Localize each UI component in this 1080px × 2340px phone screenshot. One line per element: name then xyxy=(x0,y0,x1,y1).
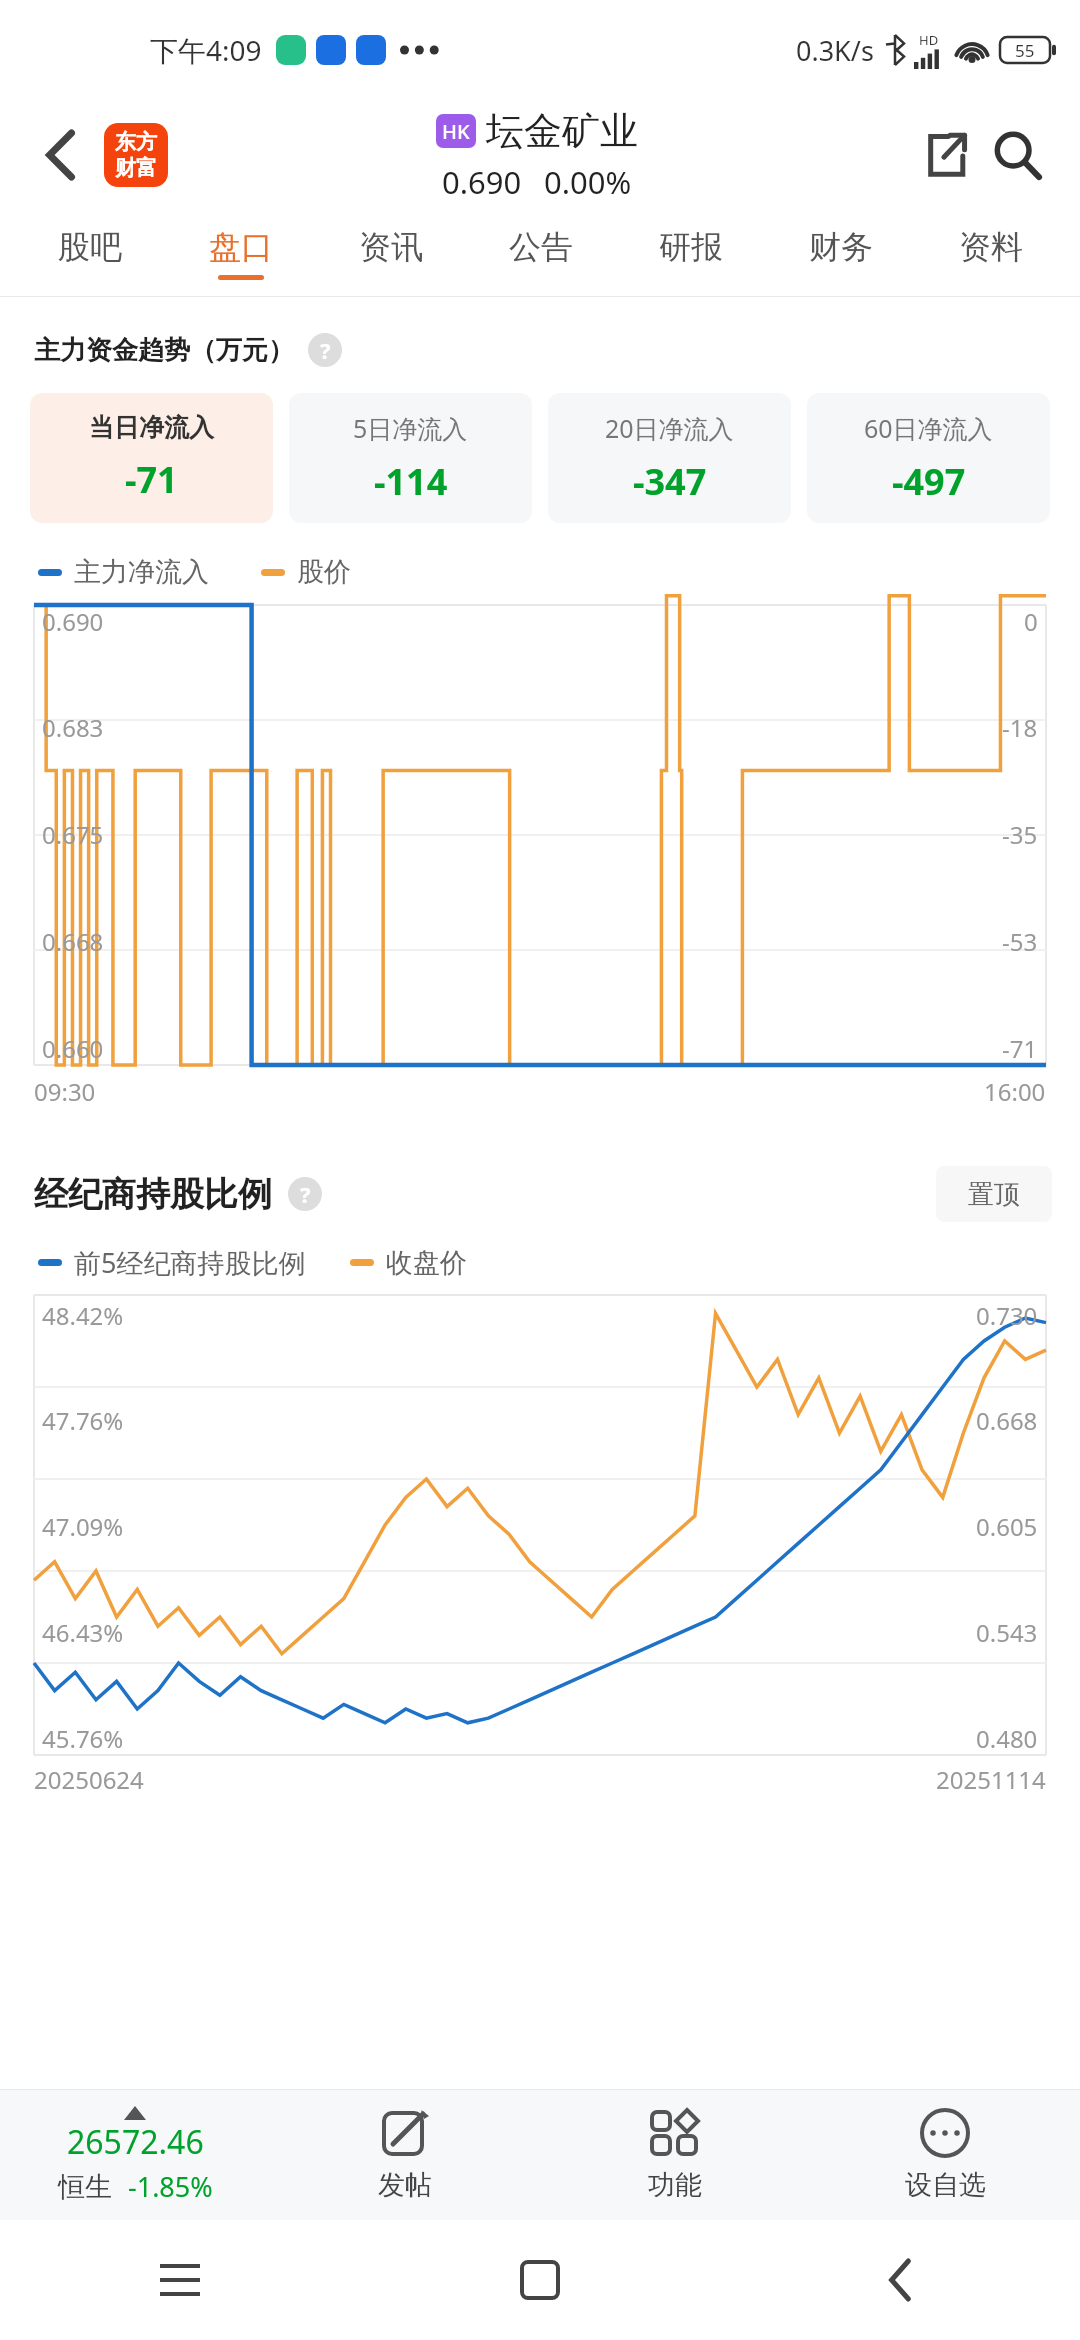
staticText: -347 xyxy=(633,457,707,506)
staticText: 股价 xyxy=(297,555,351,589)
staticText: HK xyxy=(442,118,470,145)
staticText: 前5经纪商持股比例 xyxy=(74,1244,306,1281)
staticText: 0.668 xyxy=(976,1404,1038,1437)
button[interactable]: 设自选 xyxy=(810,2090,1080,2220)
staticText: 47.76% xyxy=(42,1404,124,1437)
staticText: 东方 xyxy=(115,129,157,155)
staticText: 20251114 xyxy=(936,1763,1046,1796)
staticText: 0.683 xyxy=(42,711,104,744)
staticText: 主力净流入 xyxy=(74,555,209,589)
staticText: 研报 xyxy=(659,227,723,267)
staticText: 0.543 xyxy=(976,1616,1038,1649)
staticText: -114 xyxy=(374,457,448,506)
staticText: 设自选 xyxy=(905,2168,986,2202)
button[interactable]: 发帖 xyxy=(270,2090,540,2220)
staticText: 16:00 xyxy=(984,1075,1046,1108)
button[interactable]: 20日净流入 xyxy=(548,393,791,523)
button[interactable]: Share xyxy=(906,118,980,192)
staticText: 股吧 xyxy=(58,227,122,267)
staticText: 盘口 xyxy=(209,227,273,267)
staticText: -53 xyxy=(1002,925,1038,958)
staticText: 坛金矿业 xyxy=(486,107,638,155)
staticText: 资料 xyxy=(959,227,1023,267)
staticText: 0.690 xyxy=(42,605,104,638)
staticText: 置顶 xyxy=(968,1178,1020,1211)
staticText: 55 xyxy=(1015,39,1035,62)
staticText: 资讯 xyxy=(359,227,423,267)
button[interactable]: 26572.46 xyxy=(0,2090,270,2220)
staticText: 60日净流入 xyxy=(864,411,993,445)
staticText: 收盘价 xyxy=(386,1246,467,1280)
staticText: 26572.46 xyxy=(67,2120,204,2164)
button[interactable]: 东方财富 xyxy=(104,123,168,187)
button[interactable]: Help xyxy=(288,1177,322,1211)
staticText: -71 xyxy=(125,455,178,504)
button[interactable]: 置顶 xyxy=(936,1166,1052,1222)
staticText: 0.00% xyxy=(544,161,632,203)
staticText: ? xyxy=(300,1179,311,1209)
staticText: -18 xyxy=(1002,711,1038,744)
button[interactable]: 研报 xyxy=(616,210,766,296)
button[interactable]: 盘口 xyxy=(165,210,316,296)
staticText: 当日净流入 xyxy=(89,412,214,443)
button[interactable]: 当日净流入 xyxy=(30,393,273,523)
staticText: 0 xyxy=(1024,605,1038,638)
staticText: 功能 xyxy=(648,2168,702,2202)
staticText: 20日净流入 xyxy=(605,411,734,445)
staticText: 0.668 xyxy=(42,925,104,958)
staticText: 主力资金趋势（万元） xyxy=(34,334,294,367)
staticText: 20250624 xyxy=(34,1763,144,1796)
staticText: 0.730 xyxy=(976,1299,1038,1332)
staticText: 财务 xyxy=(809,227,873,267)
staticText: 0.675 xyxy=(42,818,104,851)
staticText: -497 xyxy=(892,457,966,506)
button[interactable]: 5日净流入 xyxy=(289,393,532,523)
staticText: 0.3K/s xyxy=(796,32,874,69)
staticText: -35 xyxy=(1002,818,1038,851)
staticText: 09:30 xyxy=(34,1075,96,1108)
staticText: 公告 xyxy=(509,227,573,267)
button[interactable]: 资料 xyxy=(916,210,1066,296)
button[interactable]: 资讯 xyxy=(316,210,466,296)
button[interactable]: 60日净流入 xyxy=(807,393,1050,523)
staticText: 0.660 xyxy=(42,1032,104,1065)
staticText: 财富 xyxy=(115,155,157,181)
staticText: 恒生 xyxy=(58,2170,112,2204)
button[interactable]: 财务 xyxy=(766,210,916,296)
staticText: 经纪商持股比例 xyxy=(34,1173,272,1216)
staticText: HD xyxy=(919,31,939,49)
button[interactable]: 公告 xyxy=(466,210,616,296)
staticText: 48.42% xyxy=(42,1299,124,1332)
staticText: -71 xyxy=(1002,1032,1038,1065)
staticText: 0.480 xyxy=(976,1722,1038,1755)
staticText: 5日净流入 xyxy=(353,411,468,445)
staticText: 46.43% xyxy=(42,1616,124,1649)
staticText: 0.605 xyxy=(976,1510,1038,1543)
button[interactable]: Help xyxy=(308,333,342,367)
staticText: 45.76% xyxy=(42,1722,124,1755)
staticText: 0.690 xyxy=(442,161,522,203)
button[interactable]: 股吧 xyxy=(14,210,165,296)
staticText: -1.85% xyxy=(128,2168,213,2205)
button[interactable]: Search xyxy=(980,118,1054,192)
staticText: 下午4:09 xyxy=(150,31,262,69)
button[interactable]: 功能 xyxy=(540,2090,810,2220)
staticText: ? xyxy=(320,335,331,365)
button[interactable]: Back xyxy=(26,120,96,190)
staticText: 发帖 xyxy=(378,2168,432,2202)
staticText: 47.09% xyxy=(42,1510,124,1543)
